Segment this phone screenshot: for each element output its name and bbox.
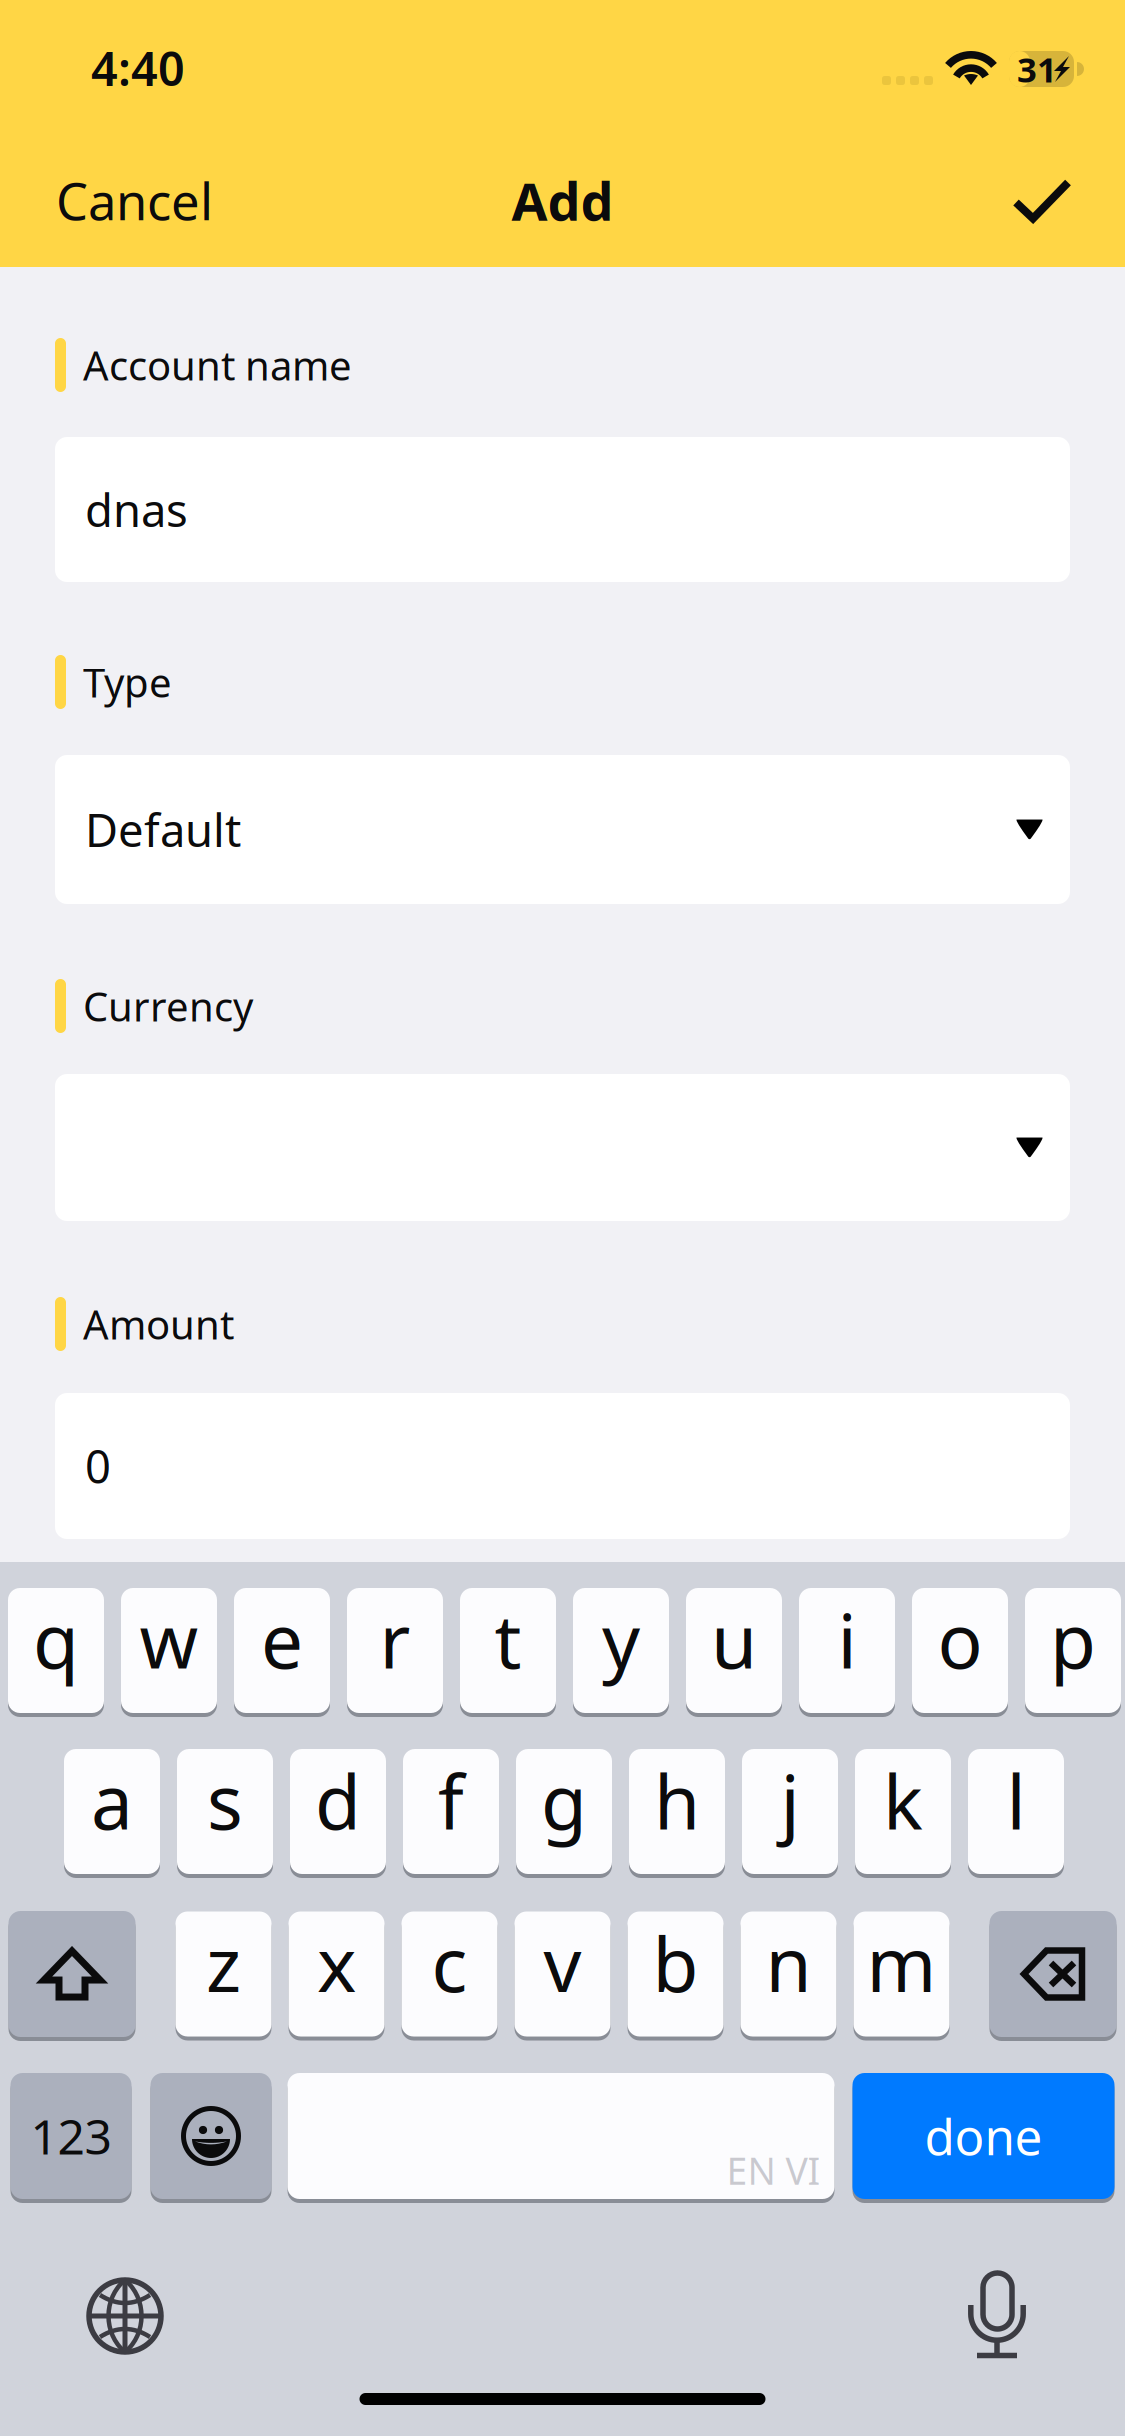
button[interactable]: z: [175, 1911, 271, 2036]
staticText: EN VI: [726, 2145, 820, 2195]
button[interactable]: dnas: [55, 437, 1070, 582]
staticText: z: [206, 1913, 241, 2013]
staticText: 123: [30, 2104, 111, 2168]
staticText: o: [937, 1590, 982, 1689]
staticText: k: [883, 1751, 923, 1850]
button[interactable]: a: [64, 1749, 160, 1874]
button[interactable]: v: [514, 1911, 610, 2036]
button[interactable]: Shift: [8, 1911, 135, 2037]
button[interactable]: i: [799, 1588, 895, 1713]
button[interactable]: w: [121, 1588, 217, 1713]
staticText: Amount: [83, 1297, 234, 1350]
staticText: y: [602, 1590, 640, 1689]
button[interactable]: Space: [287, 2073, 834, 2199]
button[interactable]: j: [742, 1749, 838, 1874]
staticText: v: [543, 1913, 581, 2013]
button[interactable]: r: [347, 1588, 443, 1713]
staticText: Default: [85, 799, 241, 860]
staticText: b: [652, 1913, 698, 2013]
button[interactable]: 0: [55, 1393, 1070, 1539]
staticText: c: [431, 1913, 467, 2013]
staticText: Cancel: [56, 167, 213, 234]
staticText: Account name: [83, 338, 352, 391]
button[interactable]: o: [912, 1588, 1008, 1713]
staticText: t: [494, 1590, 521, 1689]
staticText: l: [1006, 1751, 1025, 1850]
button[interactable]: b: [627, 1911, 723, 2036]
button[interactable]: h: [629, 1749, 725, 1874]
button[interactable]: e: [234, 1588, 330, 1713]
button[interactable]: u: [686, 1588, 782, 1713]
button[interactable]: c: [401, 1911, 497, 2036]
staticText: r: [379, 1590, 410, 1689]
staticText: i: [837, 1590, 856, 1689]
staticText: s: [207, 1751, 243, 1850]
staticText: a: [91, 1751, 133, 1850]
staticText: 4:40: [91, 37, 185, 99]
staticText: q: [33, 1590, 79, 1689]
button[interactable]: l: [968, 1749, 1064, 1874]
staticText: Type: [83, 655, 172, 708]
staticText: w: [139, 1590, 198, 1689]
staticText: done: [924, 2103, 1042, 2169]
staticText: g: [541, 1751, 587, 1850]
staticText: u: [711, 1590, 757, 1689]
staticText: Currency: [83, 979, 253, 1032]
button[interactable]: Dictation: [946, 2259, 1048, 2373]
button[interactable]: t: [460, 1588, 556, 1713]
button[interactable]: 123: [10, 2073, 131, 2199]
button[interactable]: m: [853, 1911, 949, 2036]
staticText: 0: [85, 1436, 111, 1496]
staticText: Add: [511, 166, 613, 235]
button[interactable]: n: [740, 1911, 836, 2036]
button[interactable]: Save: [1000, 158, 1084, 242]
staticText: dnas: [85, 479, 188, 540]
staticText: j: [780, 1751, 799, 1850]
button[interactable]: Emoji: [150, 2073, 271, 2199]
button[interactable]: k: [855, 1749, 951, 1874]
staticText: d: [315, 1751, 361, 1850]
button[interactable]: Delete: [989, 1911, 1116, 2037]
button[interactable]: s: [177, 1749, 273, 1874]
button[interactable]: done: [852, 2073, 1114, 2199]
button[interactable]: d: [290, 1749, 386, 1874]
staticText: n: [765, 1913, 811, 2013]
button[interactable]: Cancel: [44, 149, 225, 252]
button[interactable]: Next keyboard: [78, 2261, 186, 2371]
button[interactable]: [55, 1074, 1070, 1221]
button[interactable]: x: [288, 1911, 384, 2036]
staticText: f: [438, 1751, 464, 1850]
button[interactable]: f: [403, 1749, 499, 1874]
staticText: e: [261, 1590, 303, 1689]
staticText: m: [866, 1913, 936, 2013]
button[interactable]: y: [573, 1588, 669, 1713]
button[interactable]: p: [1025, 1588, 1121, 1713]
button[interactable]: q: [8, 1588, 104, 1713]
staticText: 31: [1017, 46, 1057, 92]
staticText: x: [317, 1913, 356, 2013]
staticText: h: [654, 1751, 700, 1850]
button[interactable]: g: [516, 1749, 612, 1874]
staticText: p: [1050, 1590, 1096, 1689]
button[interactable]: Default: [55, 755, 1070, 904]
